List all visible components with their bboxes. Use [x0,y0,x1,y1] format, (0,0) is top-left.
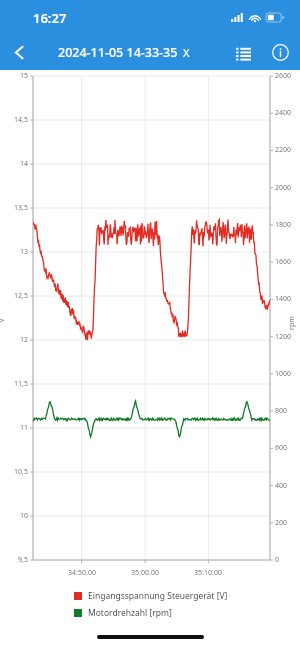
button[interactable]: Eingangsspannung Steuergerät [V] [74,590,228,602]
staticText: 14,5 [0,115,28,125]
button[interactable]: List view [226,36,260,70]
staticText: 14 [0,159,28,169]
staticText: 13 [0,247,28,257]
staticText: 1800 [275,220,292,230]
staticText: 13,5 [0,203,28,213]
staticText: 2024-11-05 14-33-35 [58,44,178,61]
staticText: 11 [0,423,28,433]
staticText: 1600 [275,257,292,267]
staticText: rpm [287,316,297,330]
staticText: 16:27 [33,9,67,27]
staticText: 2200 [275,145,292,155]
staticText: 35:10.00 [183,568,233,578]
button[interactable]: Motordrehzahl [rpm] [74,607,172,619]
staticText: 1000 [275,369,292,379]
staticText: 11,5 [0,379,28,389]
staticText: X [183,45,190,60]
staticText: 2400 [275,108,292,118]
staticText: 200 [275,518,288,528]
staticText: 400 [275,481,288,491]
staticText: V [0,317,6,322]
staticText: 34:50.00 [57,568,107,578]
staticText: 1400 [275,294,292,304]
staticText: 10,5 [0,467,28,477]
staticText: 10 [0,511,28,521]
staticText: 0 [275,555,280,565]
staticText: 15 [0,71,28,81]
staticText: 2000 [275,183,292,193]
staticText: Eingangsspannung Steuergerät [V] [88,590,228,602]
staticText: 2600 [275,71,292,81]
button[interactable]: Back [0,35,38,70]
staticText: 35:00.00 [120,568,170,578]
staticText: 9,5 [0,555,28,565]
staticText: 12 [0,335,28,345]
staticText: 12,5 [0,291,28,301]
staticText: 1200 [275,332,292,342]
button[interactable]: 2024-11-05 14-33-35 [58,44,190,61]
staticText: 800 [275,406,288,416]
staticText: 600 [275,443,288,453]
button[interactable]: Info [260,35,300,70]
staticText: Motordrehzahl [rpm] [88,607,172,619]
